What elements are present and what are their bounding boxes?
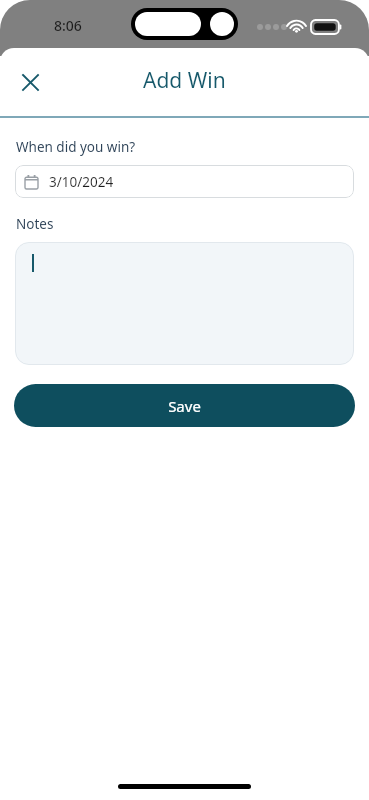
staticText: When did you win? (16, 138, 136, 156)
staticText: 8:06 (54, 16, 82, 35)
button[interactable]: 3/10/2024 (15, 165, 354, 198)
staticText: Add Win (143, 66, 226, 95)
staticText: 3/10/2024 (49, 173, 114, 191)
button[interactable]: Close (10, 62, 50, 102)
button[interactable] (15, 242, 354, 365)
staticText: Notes (16, 215, 54, 233)
staticText: Save (168, 396, 201, 416)
button[interactable]: Save (14, 384, 355, 427)
